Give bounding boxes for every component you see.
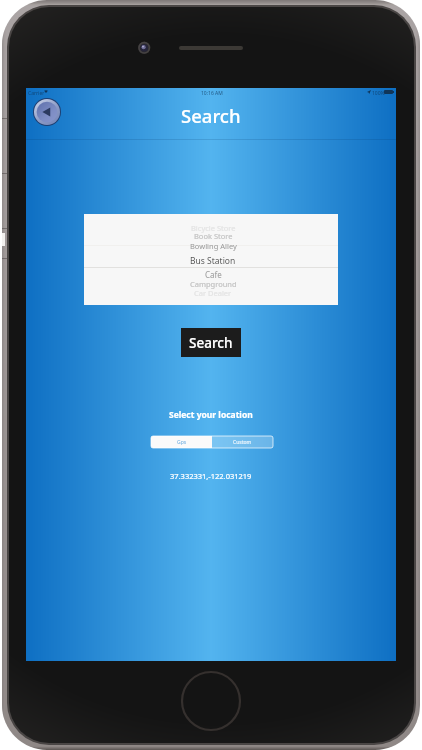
staticText: 100% [372, 90, 385, 97]
staticText: 37.332331,-122.031219 [170, 471, 252, 481]
staticText: Select your location [169, 409, 253, 421]
staticText: 10:16 AM [201, 90, 223, 97]
button[interactable]: Gps [151, 436, 212, 448]
staticText: Gps [177, 439, 187, 446]
staticText: Carrier [28, 90, 45, 97]
staticText: Campground [190, 279, 237, 289]
staticText: Search [181, 103, 241, 128]
button[interactable]: Search [181, 328, 241, 357]
button[interactable]: Custom [212, 436, 273, 448]
button[interactable] [84, 214, 338, 305]
staticText: Bowling Alley [190, 241, 237, 251]
button[interactable]: Back [33, 98, 61, 126]
staticText: Search [189, 334, 233, 352]
staticText: Bicycle Store [191, 223, 236, 233]
staticText: Bus Station [190, 255, 236, 267]
staticText: Cafe [205, 269, 222, 280]
staticText: Car Dealer [194, 288, 232, 298]
staticText: Book Store [194, 231, 233, 241]
staticText: Custom [233, 439, 252, 446]
